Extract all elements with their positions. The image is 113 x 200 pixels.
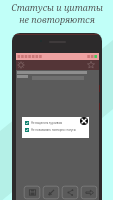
button[interactable]: Favorite [87,61,95,69]
button[interactable]: Close [80,117,88,125]
button[interactable]: Share [61,185,79,200]
staticText: Не показывать повторно статусы [31,128,76,132]
staticText: Статусы и цитаты [11,1,103,13]
button[interactable]: Send [80,185,98,200]
button[interactable]: Edit [42,185,60,200]
button[interactable]: Не показывать повторно статусы [25,128,76,132]
staticText: не повторяются [19,13,95,25]
button[interactable]: Не выделять курсивом [25,121,63,125]
button[interactable]: Save [23,185,41,200]
staticText: Не выделять курсивом [31,121,63,125]
button[interactable]: Settings [17,61,25,69]
